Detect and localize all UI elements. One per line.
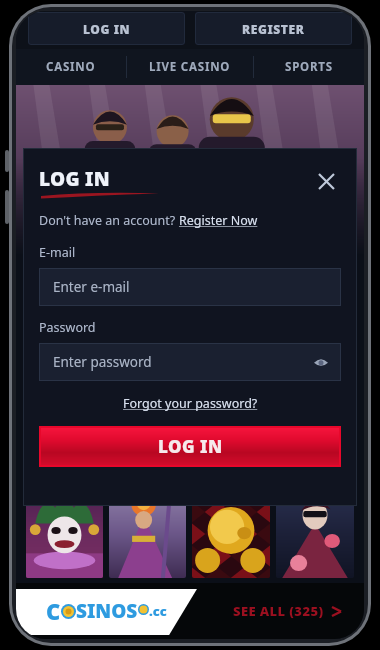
button[interactable]: CASINO (16, 49, 126, 85)
staticText: CASINO (46, 59, 96, 75)
button[interactable]: LOG IN (41, 428, 339, 465)
button[interactable]: SPORTS (254, 49, 364, 85)
staticText: .cc (149, 602, 167, 620)
staticText: LIVE CASINO (149, 59, 231, 75)
button[interactable]: Close (311, 166, 341, 196)
staticText: Enter e-mail (53, 278, 130, 296)
staticText: LOG IN (158, 435, 223, 458)
staticText: Password (39, 319, 96, 336)
staticText: SPORTS (285, 59, 333, 75)
staticText: SINOS (76, 598, 138, 624)
staticText: E-mail (39, 244, 76, 261)
button[interactable] (26, 490, 103, 578)
button[interactable]: Forgot your password? (123, 395, 258, 412)
button[interactable]: LIVE CASINO (127, 49, 253, 85)
staticText: LOG IN (39, 166, 110, 192)
staticText: Don't have an account? (39, 212, 179, 229)
button[interactable] (192, 490, 270, 578)
staticText: REGISTER (242, 21, 305, 37)
button[interactable]: Register Now (179, 212, 258, 229)
staticText: Enter password (53, 353, 152, 371)
staticText: Register Now (179, 212, 258, 229)
staticText: SEE ALL (325) (233, 602, 324, 620)
staticText: C (46, 596, 61, 626)
button[interactable]: Enter password (39, 343, 341, 381)
staticText: Forgot your password? (123, 395, 258, 412)
button[interactable]: Casinos.cc home (46, 596, 167, 626)
staticText: LOG IN (83, 21, 131, 37)
button[interactable]: LOG IN (28, 12, 185, 45)
button[interactable] (109, 490, 186, 578)
button[interactable]: SEE ALL (325) (233, 602, 342, 620)
button[interactable] (276, 490, 354, 578)
button[interactable]: REGISTER (195, 12, 352, 45)
button[interactable]: Enter e-mail (39, 268, 341, 306)
